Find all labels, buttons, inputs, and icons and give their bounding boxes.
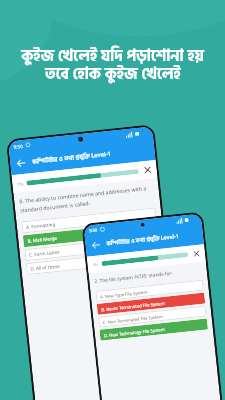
button[interactable]: B. Never Terminated File System xyxy=(97,293,205,315)
staticText: 2. The file system 'NTFS' stands for- xyxy=(94,270,173,285)
staticText: A. Formatting xyxy=(26,221,56,230)
staticText: C. Non Terminated File System xyxy=(102,313,164,325)
button[interactable]: A. New Type File System xyxy=(95,280,204,302)
staticText: 9:50 xyxy=(13,143,24,150)
staticText: 15s xyxy=(92,261,99,267)
button[interactable]: Close quiz xyxy=(143,165,152,174)
staticText: A. New Type File System xyxy=(100,288,148,299)
staticText: 8. The ability to combine name and addre… xyxy=(19,183,155,214)
button[interactable]: Back xyxy=(15,156,28,170)
button[interactable]: A. Formatting xyxy=(21,207,157,233)
staticText: কম্পিউটার ও তথ্য প্রযুক্তি Level-1 xyxy=(32,149,111,167)
staticText: B. Never Terminated File System xyxy=(101,300,165,312)
staticText: D. All of these xyxy=(30,263,60,272)
button[interactable]: C. Non Terminated File System xyxy=(98,305,207,328)
staticText: C. Form Letter xyxy=(29,249,60,258)
button[interactable]: Back xyxy=(90,239,102,251)
staticText: 9:50 xyxy=(89,226,98,233)
button[interactable]: C. Form Letter xyxy=(24,235,160,261)
button[interactable]: B. Mail Merge xyxy=(23,221,158,247)
staticText: কম্পিউটার ও তথ্য প্রযুক্তি Level-1 xyxy=(106,232,179,248)
staticText: 15s xyxy=(17,181,24,187)
button[interactable]: Close quiz xyxy=(193,250,200,257)
button[interactable]: D. All of these xyxy=(26,249,161,275)
staticText: D. New Technology File System xyxy=(104,326,165,338)
staticText: B. Mail Merge xyxy=(27,235,58,244)
staticText: কুইজ খেলেই যদি পড়াশোনা হয় xyxy=(21,44,204,69)
staticText: তবে হোক কুইজ খেলেই xyxy=(45,62,181,87)
button[interactable]: D. New Technology File System xyxy=(99,318,208,341)
